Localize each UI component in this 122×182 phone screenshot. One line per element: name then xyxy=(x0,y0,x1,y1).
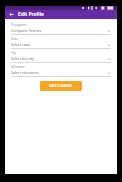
staticText: Select the city xyxy=(11,56,107,61)
staticText: City xyxy=(11,51,17,55)
staticText: Select education xyxy=(11,70,107,75)
staticText: Education xyxy=(11,65,25,69)
staticText: Edit Profile xyxy=(18,11,44,18)
staticText: Computer Science xyxy=(11,28,107,33)
staticText: Occupation xyxy=(11,23,27,27)
button[interactable]: Education xyxy=(11,63,111,77)
staticText: Select state xyxy=(11,42,107,47)
staticText: State xyxy=(11,37,18,41)
button[interactable]: State xyxy=(11,35,111,49)
button[interactable]: City xyxy=(11,49,111,63)
button[interactable]: Occupation xyxy=(11,21,111,35)
button[interactable]: SAVE CHANGES xyxy=(40,81,82,91)
staticText: SAVE CHANGES xyxy=(49,84,73,88)
button[interactable]: Navigate up xyxy=(8,11,15,18)
